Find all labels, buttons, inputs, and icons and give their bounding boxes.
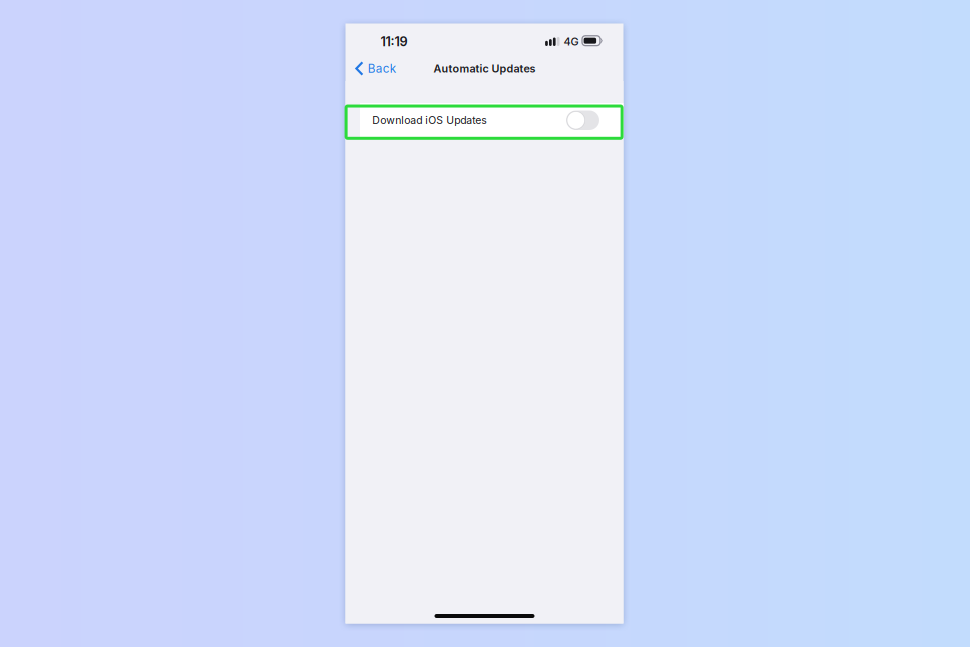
staticText: 4G	[563, 35, 578, 48]
staticText: 11:19	[380, 34, 407, 49]
staticText: Download iOS Updates	[372, 114, 487, 127]
staticText: Automatic Updates	[433, 62, 535, 75]
button[interactable]: Download iOS Updates	[360, 103, 623, 137]
button[interactable]: Back	[345, 54, 404, 83]
staticText: Back	[368, 61, 396, 76]
